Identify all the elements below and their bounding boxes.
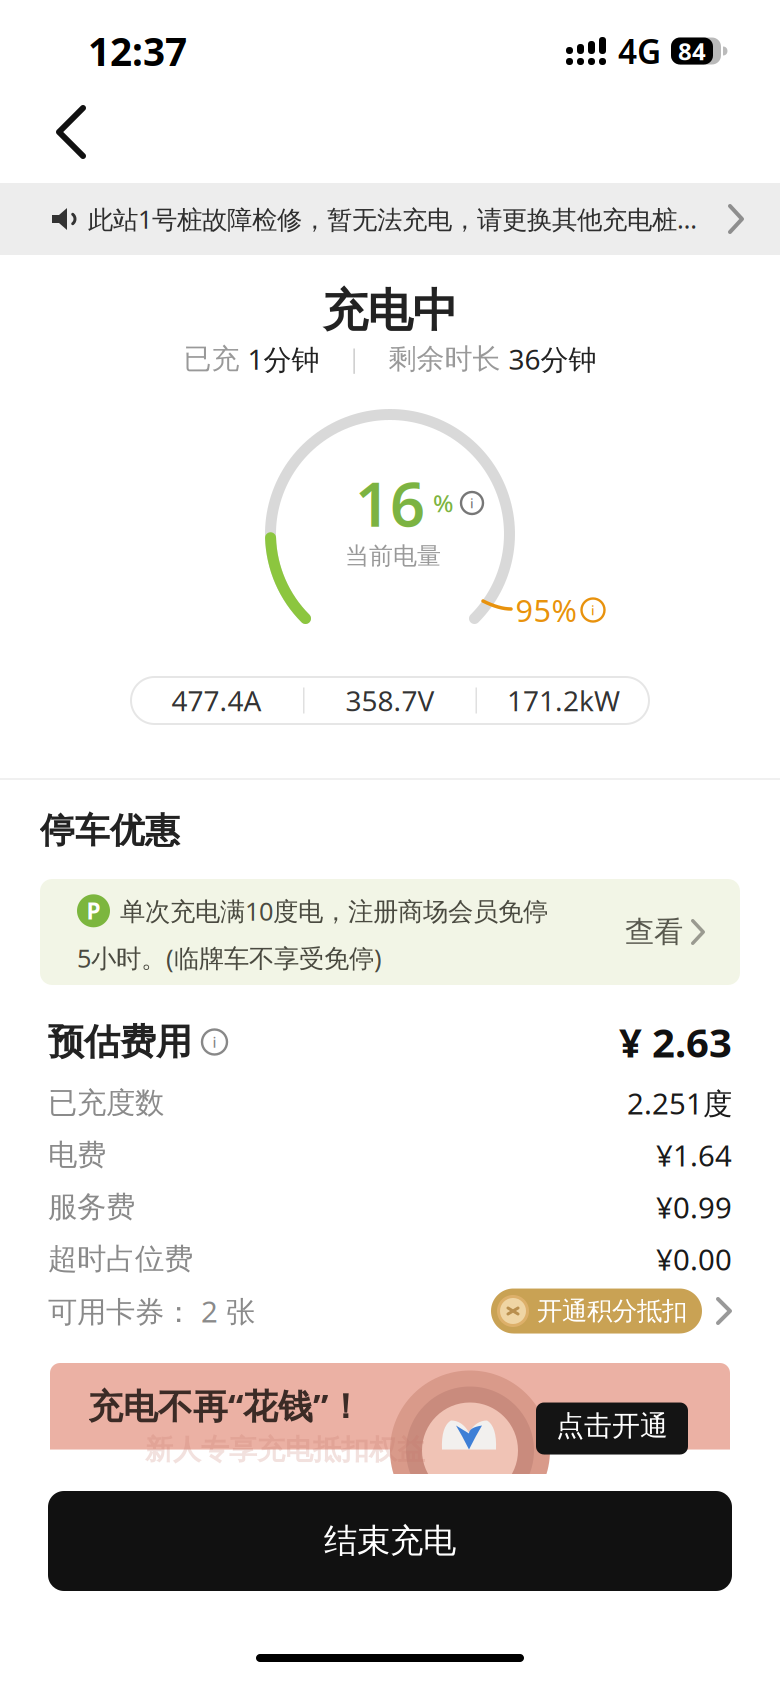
staticText: 358.7V — [345, 682, 434, 719]
staticText: ¥ 2.63 — [619, 1015, 732, 1068]
staticText: 已充 — [183, 342, 247, 376]
staticText: 可用卡券： 2 张 — [48, 1291, 255, 1330]
staticText: 电费 — [48, 1137, 106, 1173]
staticText: ¥0.00 — [656, 1239, 732, 1278]
button[interactable]: 此站1号桩故障检修，暂无法充电，请更换其他充电桩… — [0, 183, 780, 255]
staticText: ¥1.64 — [656, 1135, 732, 1174]
button[interactable]: 返回 — [0, 80, 116, 160]
staticText: 服务费 — [48, 1189, 135, 1225]
staticText: % — [433, 487, 453, 519]
staticText: 4G — [618, 29, 661, 73]
button[interactable]: 卡券 — [702, 1297, 732, 1325]
button[interactable]: 查看 — [625, 879, 705, 985]
staticText: 16 — [355, 462, 425, 544]
staticText: 新人专享充电抵扣权益 — [145, 1432, 425, 1467]
staticText: 超时占位费 — [48, 1241, 193, 1277]
button[interactable]: 充电不再花钱 点击开通 — [50, 1363, 730, 1474]
staticText: 预估费用 — [48, 1020, 192, 1064]
staticText: 36分钟 — [508, 340, 596, 378]
button[interactable]: 结束充电 — [48, 1491, 732, 1591]
staticText: P — [86, 896, 100, 926]
staticText: 结束充电 — [324, 1520, 456, 1561]
staticText: 查看 — [625, 914, 683, 950]
staticText: ¥0.99 — [656, 1187, 732, 1226]
staticText: 2.251度 — [627, 1083, 732, 1122]
staticText: i — [212, 1032, 216, 1052]
staticText: 当前电量 — [345, 541, 441, 571]
staticText: 此站1号桩故障检修，暂无法充电，请更换其他充电桩… — [88, 202, 697, 236]
staticText: 1分钟 — [247, 340, 319, 378]
button[interactable]: 充电上限说明 — [581, 598, 604, 621]
staticText: 84 — [678, 35, 706, 67]
staticText: 477.4A — [171, 682, 261, 719]
staticText: 开通积分抵扣 — [537, 1295, 687, 1326]
staticText: 171.2kW — [507, 682, 620, 719]
staticText: i — [470, 494, 474, 512]
staticText: 停车优惠 — [40, 809, 180, 852]
staticText: i — [591, 601, 595, 619]
staticText: 点击开通 — [556, 1409, 668, 1443]
staticText: 5小时。(临牌车不享受免停) — [77, 941, 382, 975]
staticText: 12:37 — [88, 25, 187, 77]
staticText: 剩余时长 — [388, 342, 508, 376]
button[interactable]: 电量说明 — [461, 492, 483, 514]
staticText: ｜ — [341, 343, 366, 374]
staticText: 已充度数 — [48, 1085, 164, 1121]
staticText: 充电中 — [322, 283, 457, 339]
button[interactable]: 开通积分抵扣 — [491, 1288, 702, 1333]
staticText: 单次充电满10度电，注册商场会员免停 — [120, 894, 548, 928]
staticText: 充电不再“花钱”！ — [88, 1382, 363, 1428]
button[interactable]: 费用说明 — [202, 1029, 227, 1054]
staticText: 95% — [515, 590, 576, 630]
